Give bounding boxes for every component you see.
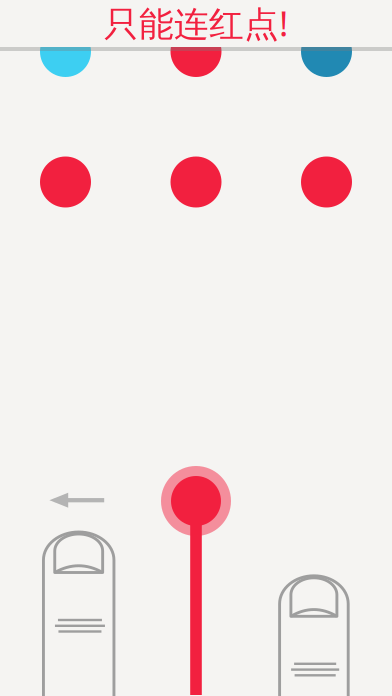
staticText: 只能连红点! [104,0,288,46]
button[interactable]: Red dot row 2 column 2 [170,156,221,207]
button[interactable]: Blue dot row 1 column 3 [301,26,352,77]
button[interactable]: Red dot row 2 column 3 [301,156,352,207]
button[interactable]: Red dot row 2 column 1 [40,156,91,207]
button[interactable]: Red dot row 1 column 2 [170,26,221,77]
button[interactable]: Cyan dot row 1 column 1 [40,26,91,77]
